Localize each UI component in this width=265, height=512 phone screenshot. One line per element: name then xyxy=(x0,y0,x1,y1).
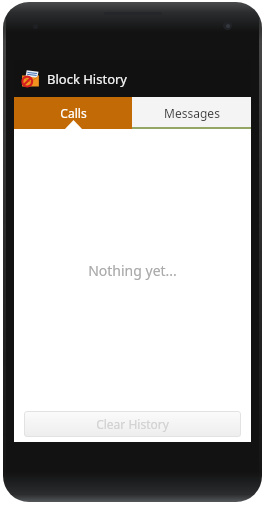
staticText: Nothing yet... xyxy=(88,261,177,280)
staticText: Calls xyxy=(60,105,87,121)
staticText: Block History xyxy=(47,70,128,88)
button[interactable]: Calls xyxy=(14,97,132,129)
staticText: Clear History xyxy=(96,416,169,432)
button[interactable]: Messages xyxy=(132,97,251,129)
staticText: Messages xyxy=(164,105,220,121)
button[interactable]: Clear History xyxy=(24,411,241,437)
